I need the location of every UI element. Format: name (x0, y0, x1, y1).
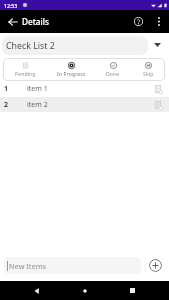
button[interactable]: Check List 2 (2, 36, 148, 55)
staticText: Skip (143, 71, 154, 78)
button[interactable]: 2 (0, 97, 169, 112)
button[interactable]: Help (131, 14, 146, 29)
button[interactable]: Expand list selector (148, 36, 167, 55)
staticText: 2 (4, 100, 9, 110)
staticText: Details (22, 16, 49, 27)
button[interactable]: In Progress (47, 58, 95, 81)
staticText: 12:53 (4, 2, 18, 9)
button[interactable]: Home (75, 281, 95, 300)
button[interactable]: Back (5, 14, 21, 30)
staticText: Done (106, 71, 120, 78)
button[interactable]: History (152, 83, 164, 95)
button[interactable]: Pending (3, 58, 47, 81)
button[interactable]: Add item (149, 259, 162, 272)
button[interactable]: History (152, 99, 164, 111)
button[interactable]: Done (95, 58, 131, 81)
staticText: Pending (15, 71, 36, 78)
staticText: New Items (9, 261, 47, 271)
button[interactable]: Recents (122, 281, 142, 300)
staticText: Check List 2 (6, 40, 55, 52)
staticText: item 1 (27, 84, 48, 94)
button[interactable]: Skip (131, 58, 165, 81)
button[interactable]: Back (27, 281, 47, 300)
button[interactable]: 1 (0, 81, 169, 97)
button[interactable]: More options (152, 15, 165, 28)
staticText: item 2 (27, 100, 48, 110)
staticText: In Progress (57, 71, 86, 78)
staticText: 1 (4, 84, 9, 94)
button[interactable]: New Items (4, 257, 141, 274)
